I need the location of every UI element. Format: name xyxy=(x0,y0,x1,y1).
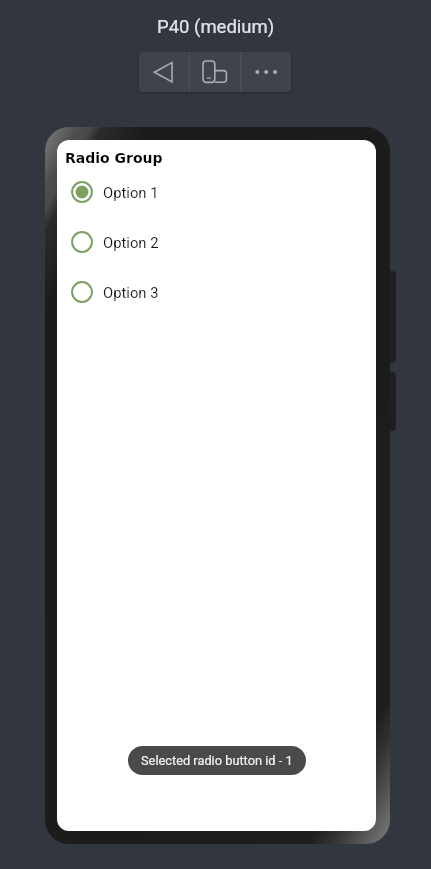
staticText: Option 3 xyxy=(103,284,159,301)
button[interactable]: Option 1 xyxy=(57,175,376,209)
button[interactable]: Option 2 xyxy=(57,225,376,259)
button[interactable]: Rotate device xyxy=(190,52,240,92)
button[interactable]: More options xyxy=(241,52,291,92)
staticText: P40 (medium) xyxy=(157,16,275,38)
staticText: Option 1 xyxy=(103,184,159,201)
staticText: Radio Group xyxy=(65,150,163,166)
staticText: Selected radio button id - 1 xyxy=(141,753,293,768)
button[interactable]: Back xyxy=(139,52,189,92)
staticText: Option 2 xyxy=(103,234,159,251)
button[interactable]: Option 3 xyxy=(57,275,376,309)
